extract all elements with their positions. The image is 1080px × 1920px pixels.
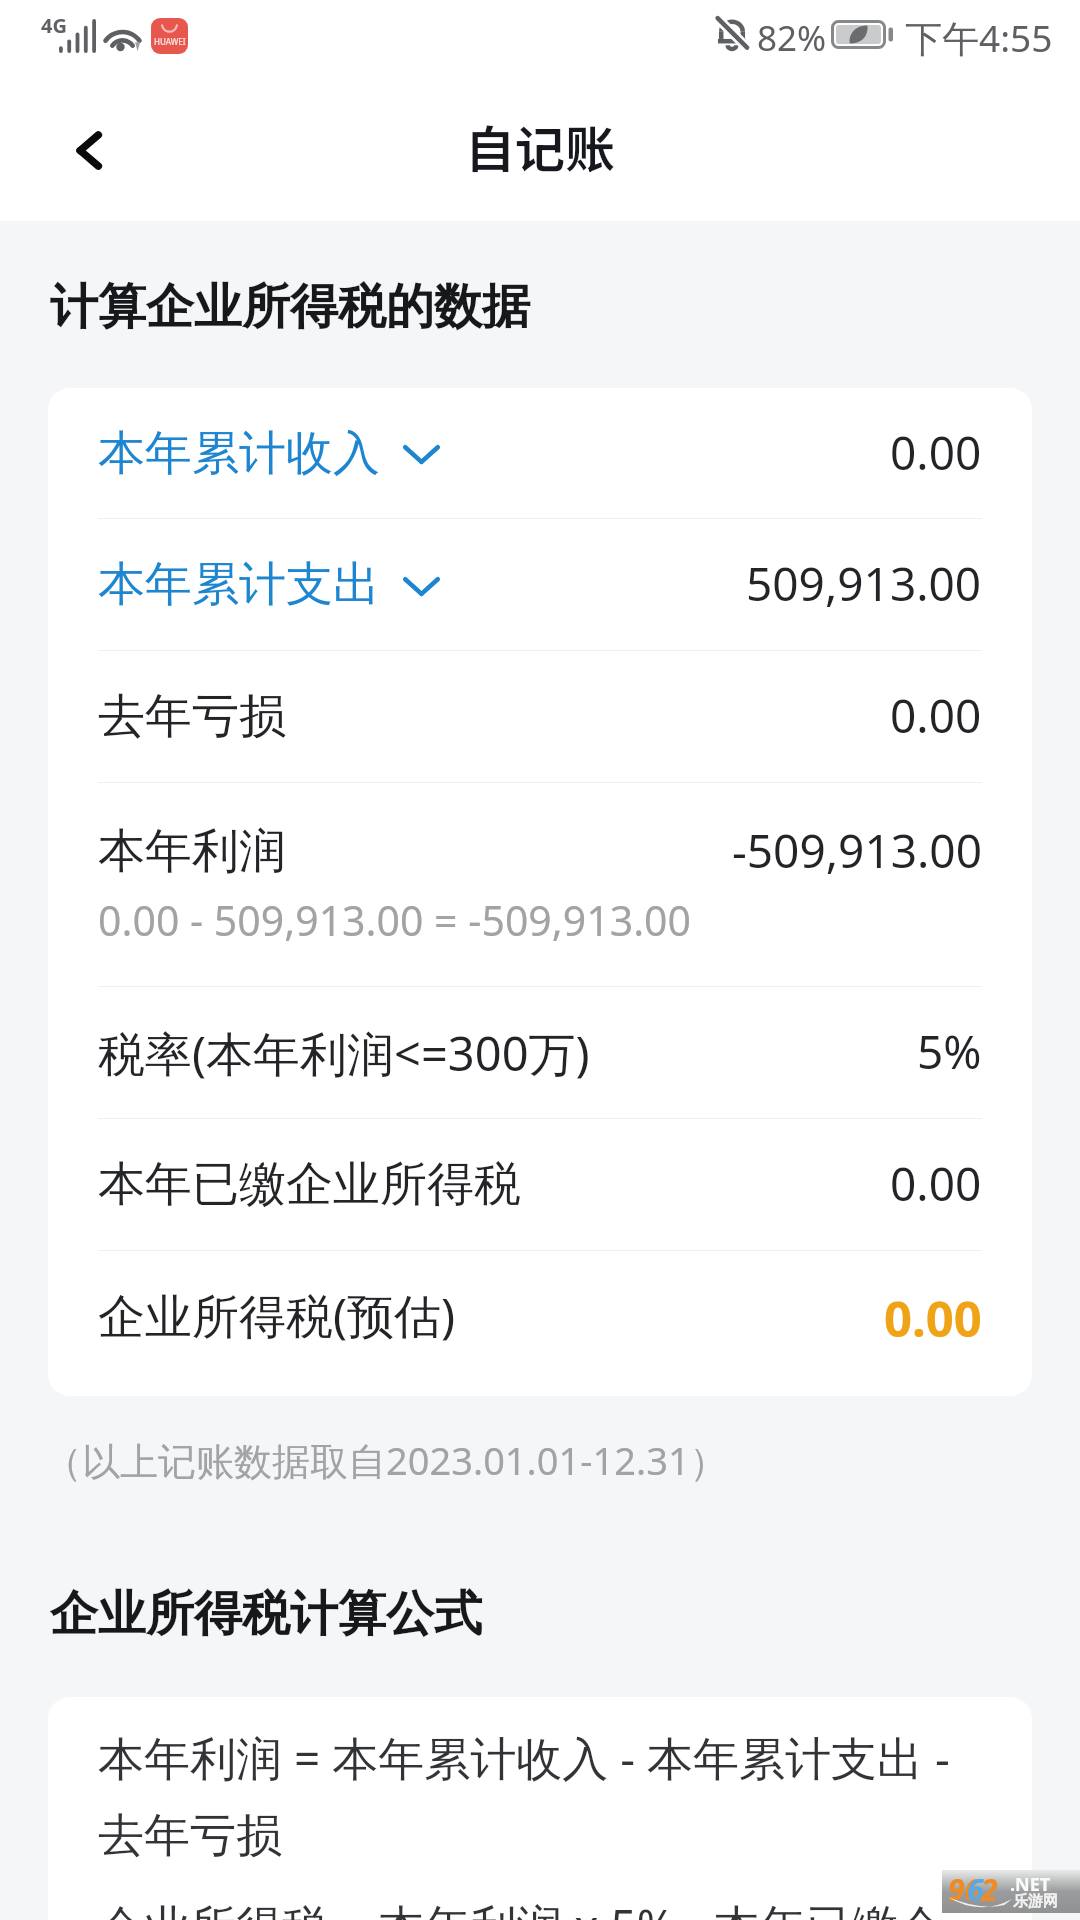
staticText: 去年亏损 [98,687,286,746]
staticText: 0.00 [890,1152,982,1215]
button[interactable]: 本年累计支出 [48,519,1032,650]
staticText: 税率(本年利润<=300万) [98,1021,590,1085]
staticText: 0.00 [884,1285,982,1352]
button[interactable]: 税率(本年利润<=300万) [48,987,1032,1118]
staticText: 企业所得税计算公式 [50,1584,482,1644]
button[interactable]: 企业所得税(预估) [48,1251,1032,1396]
staticText: 乐游网 [1013,1892,1058,1911]
staticText: 6 [967,1869,984,1910]
staticText: （以上记账数据取自2023.01.01-12.31） [44,1434,728,1486]
button[interactable]: 本年已缴企业所得税 [48,1119,1032,1250]
button[interactable]: 本年累计收入 [48,388,1032,518]
staticText: .NET [1010,1872,1051,1897]
staticText: 4G [41,12,67,39]
staticText: HUAWEI [154,36,186,47]
staticText: 企业所得税 = 本年利润 x 5% - 本年已缴企业所得税 [98,1883,982,1920]
staticText: 0.00 - 509,913.00 = -509,913.00 [98,892,692,948]
staticText: 下午4:55 [905,12,1053,63]
button[interactable]: Back [49,110,129,190]
staticText: 本年利润 [98,822,286,881]
staticText: -509,913.00 [732,819,982,882]
button[interactable]: 去年亏损 [48,651,1032,782]
staticText: 计算企业所得税的数据 [50,277,530,337]
staticText: 本年利润 = 本年累计收入 - 本年累计支出 - 去年亏损 [98,1715,982,1870]
button[interactable]: 本年利润 [48,783,1032,986]
staticText: 企业所得税(预估) [98,1283,456,1347]
staticText: 962 [948,1869,998,1910]
staticText: 本年累计收入 [98,424,380,483]
staticText: 5% [917,1020,982,1083]
staticText: 0.00 [890,421,982,484]
staticText: 本年累计支出 [98,555,380,614]
staticText: 自记账 [465,110,615,182]
staticText: 82% [757,14,827,62]
staticText: 本年已缴企业所得税 [98,1155,521,1214]
staticText: 0.00 [890,684,982,747]
staticText: 509,913.00 [746,552,982,615]
